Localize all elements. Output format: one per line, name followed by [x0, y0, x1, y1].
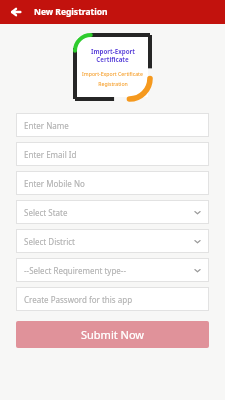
staticText: Select State [24, 207, 68, 218]
button[interactable]: --Select Requirement type-- [16, 258, 209, 282]
button[interactable]: Select State [16, 200, 209, 224]
staticText: Select District [24, 236, 76, 247]
staticText: Submit Now [81, 327, 144, 342]
staticText: --Select Requirement type-- [24, 265, 126, 276]
button[interactable]: Enter Mobile No [16, 171, 209, 195]
button[interactable]: Enter Name [16, 113, 209, 137]
button[interactable]: Select District [16, 229, 209, 253]
button[interactable]: Enter Email Id [16, 142, 209, 166]
staticText: Enter Name [24, 120, 69, 131]
staticText: Import-Export Certificate [82, 70, 143, 77]
staticText: Enter Email Id [24, 149, 77, 160]
button[interactable]: Create Password for this app [16, 287, 209, 311]
button[interactable]: Submit Now [16, 321, 209, 348]
staticText: Create Password for this app [24, 294, 133, 305]
staticText: Certificate [96, 55, 129, 63]
button[interactable]: Back [6, 2, 26, 22]
staticText: Enter Mobile No [24, 178, 85, 189]
staticText: Registration [98, 80, 128, 87]
staticText: Import-Export [91, 47, 135, 55]
staticText: New Registration [34, 6, 108, 18]
